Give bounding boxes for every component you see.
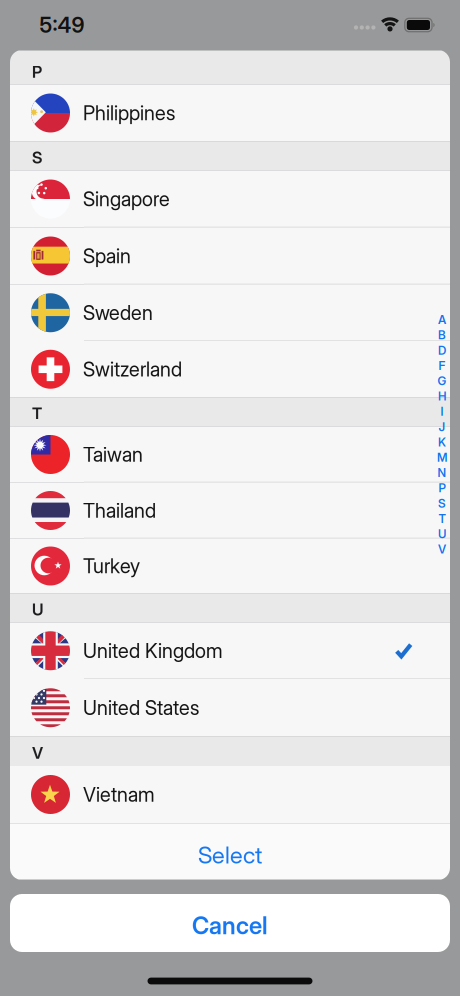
staticText: Singapore: [83, 187, 170, 211]
staticText: Vietnam: [83, 783, 155, 806]
button[interactable]: Thailand: [10, 482, 450, 538]
button[interactable]: Taiwan: [10, 426, 450, 482]
staticText: P: [438, 481, 445, 495]
button[interactable]: Turkey: [10, 538, 450, 593]
staticText: V: [438, 542, 446, 556]
staticText: I: [440, 404, 443, 419]
staticText: N: [437, 466, 446, 480]
button[interactable]: Cancel: [10, 894, 450, 952]
staticText: J: [438, 420, 445, 434]
button[interactable]: Switzerland: [10, 341, 450, 397]
button[interactable]: Singapore: [10, 170, 450, 227]
staticText: M: [437, 450, 447, 465]
staticText: A: [438, 313, 446, 327]
button[interactable]: Select: [10, 824, 450, 879]
staticText: D: [438, 343, 446, 358]
staticText: Select: [198, 841, 262, 869]
button[interactable]: Spain: [10, 227, 450, 284]
staticText: T: [32, 404, 42, 423]
staticText: U: [438, 527, 446, 541]
staticText: United Kingdom: [83, 639, 223, 663]
staticText: K: [438, 435, 446, 449]
staticText: Turkey: [83, 554, 140, 578]
staticText: Spain: [83, 244, 131, 268]
button[interactable]: Section index: [437, 312, 447, 557]
staticText: V: [32, 743, 43, 763]
staticText: Switzerland: [83, 357, 182, 381]
staticText: Thailand: [83, 499, 156, 522]
staticText: H: [438, 389, 446, 403]
staticText: P: [32, 62, 42, 82]
staticText: G: [437, 374, 446, 388]
staticText: B: [438, 328, 446, 342]
button[interactable]: Sweden: [10, 284, 450, 341]
staticText: Philippines: [83, 101, 175, 125]
staticText: S: [438, 496, 446, 511]
staticText: Sweden: [83, 301, 153, 325]
staticText: T: [438, 511, 445, 526]
button[interactable]: United States: [10, 679, 450, 736]
staticText: Taiwan: [83, 443, 143, 466]
staticText: U: [32, 600, 43, 619]
staticText: United States: [83, 696, 199, 720]
staticText: F: [438, 358, 445, 373]
staticText: Cancel: [192, 911, 268, 940]
button[interactable]: Philippines: [10, 84, 450, 141]
button[interactable]: United Kingdom: [10, 622, 450, 679]
staticText: 5:49: [39, 12, 84, 38]
button[interactable]: Vietnam: [10, 766, 450, 823]
staticText: S: [32, 148, 42, 167]
